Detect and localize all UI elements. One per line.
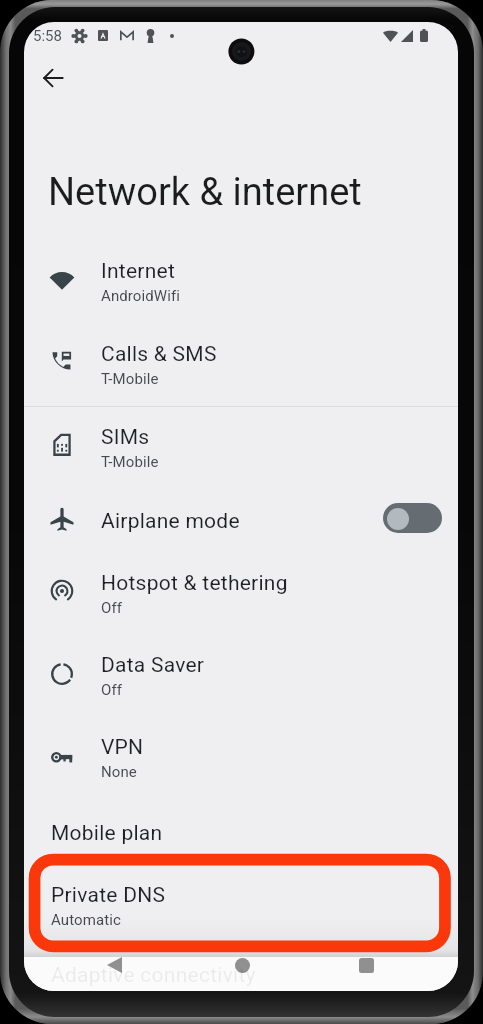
button[interactable]: Calls & SMS	[24, 342, 458, 404]
staticText: Automatic	[51, 911, 121, 929]
button[interactable]: Airplane mode, off	[383, 503, 442, 533]
staticText: Data Saver	[101, 653, 205, 678]
button[interactable]: VPN	[24, 735, 458, 797]
staticText: T-Mobile	[101, 370, 159, 388]
staticText: Mobile plan	[51, 821, 163, 846]
button[interactable]: Airplane mode	[24, 509, 458, 561]
button[interactable]: Hotspot & tethering	[24, 571, 458, 633]
staticText: AndroidWifi	[101, 287, 181, 305]
button[interactable]: Mobile plan	[24, 821, 458, 873]
button[interactable]: Adaptive connectivity	[24, 963, 458, 991]
staticText: Network & internet	[48, 170, 362, 215]
staticText: 5:58	[33, 27, 62, 45]
staticText: Internet	[101, 259, 176, 284]
button[interactable]: Back	[29, 54, 77, 102]
button[interactable]: Data Saver	[24, 653, 458, 715]
staticText: SIMs	[101, 425, 150, 450]
button[interactable]: Private DNS	[24, 883, 458, 945]
staticText: Calls & SMS	[101, 342, 217, 367]
button[interactable]: Back	[90, 948, 138, 982]
staticText: Off	[101, 681, 123, 699]
staticText: Off	[101, 599, 123, 617]
button[interactable]: Home	[218, 948, 266, 982]
staticText: Adaptive connectivity	[51, 963, 256, 988]
staticText: Hotspot & tethering	[101, 571, 288, 596]
staticText: Airplane mode	[101, 509, 240, 534]
staticText: T-Mobile	[101, 453, 159, 471]
staticText: VPN	[101, 735, 144, 760]
button[interactable]: Recent apps	[342, 948, 390, 982]
staticText: Private DNS	[51, 883, 166, 908]
button[interactable]: Internet	[24, 259, 458, 321]
button[interactable]: SIMs	[24, 425, 458, 487]
staticText: None	[101, 763, 137, 781]
